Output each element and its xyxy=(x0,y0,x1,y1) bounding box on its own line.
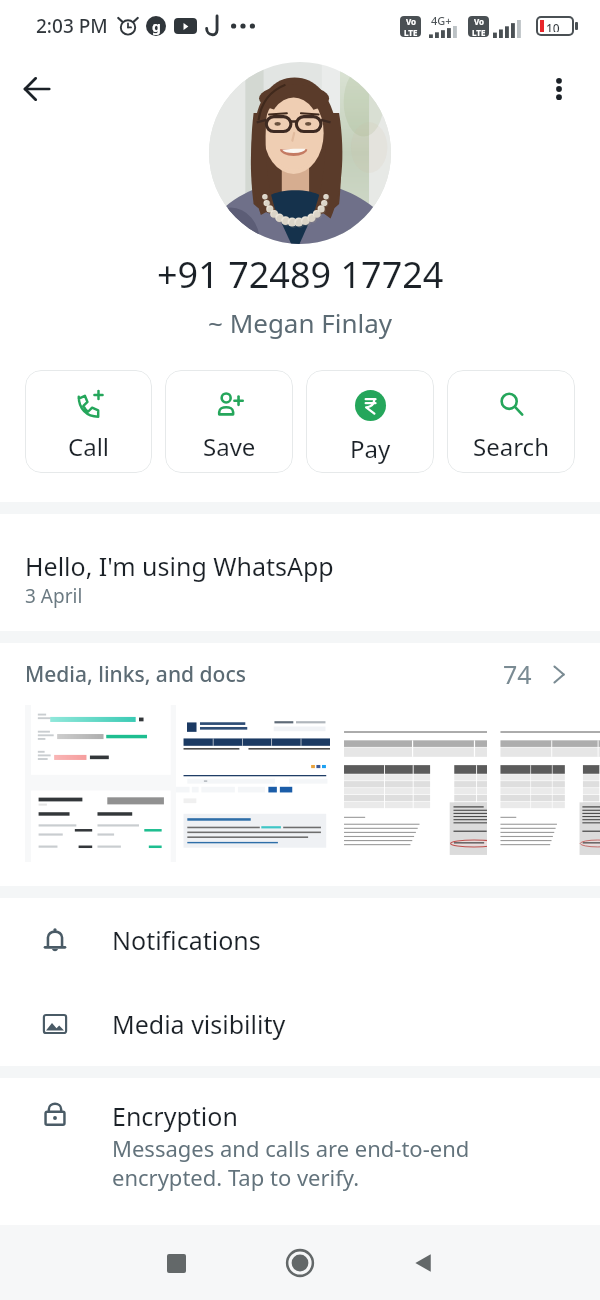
staticText: Notifications xyxy=(112,923,261,957)
button[interactable] xyxy=(487,705,600,862)
button[interactable]: Save xyxy=(165,370,293,473)
button[interactable] xyxy=(25,705,176,862)
button[interactable]: Home xyxy=(272,1235,328,1291)
staticText: 10 xyxy=(546,20,560,32)
button[interactable]: Recent apps xyxy=(148,1235,204,1291)
staticText: 74 xyxy=(503,657,532,691)
staticText: Call xyxy=(68,430,110,463)
staticText: LTE xyxy=(404,27,418,37)
staticText: Media visibility xyxy=(112,1007,286,1041)
staticText: 3 April xyxy=(25,583,83,609)
button[interactable]: Hello, I'm using WhatsApp xyxy=(0,514,600,631)
button[interactable]: Encryption xyxy=(0,1078,600,1223)
button[interactable]: Media, links, and docs xyxy=(0,643,600,705)
button[interactable]: Call xyxy=(25,370,152,473)
staticText: Pay xyxy=(350,432,391,465)
staticText: Media, links, and docs xyxy=(25,660,246,689)
staticText: Hello, I'm using WhatsApp xyxy=(25,549,334,583)
staticText: g xyxy=(152,17,161,36)
button[interactable]: More options xyxy=(534,64,584,114)
staticText: Messages and calls are end-to-end encryp… xyxy=(112,1133,470,1192)
staticText: +91 72489 17724 xyxy=(157,250,444,299)
staticText: ~ Megan Finlay xyxy=(208,305,393,340)
staticText: 2:03 PM xyxy=(36,13,108,39)
staticText: Save xyxy=(203,430,256,463)
button[interactable]: Pay xyxy=(306,370,434,473)
button[interactable]: Search xyxy=(447,370,575,473)
staticText: Encryption xyxy=(112,1099,238,1133)
button[interactable]: Media visibility xyxy=(0,982,600,1066)
button[interactable]: Notifications xyxy=(0,898,600,982)
button[interactable]: Back xyxy=(396,1235,452,1291)
staticText: 4G+ xyxy=(431,13,452,28)
staticText: LTE xyxy=(472,27,486,37)
button[interactable] xyxy=(179,705,330,862)
button[interactable]: Back xyxy=(12,64,62,114)
staticText: Vo xyxy=(474,16,485,27)
staticText: Search xyxy=(473,430,549,463)
staticText: Vo xyxy=(406,16,417,27)
button[interactable] xyxy=(333,705,484,862)
